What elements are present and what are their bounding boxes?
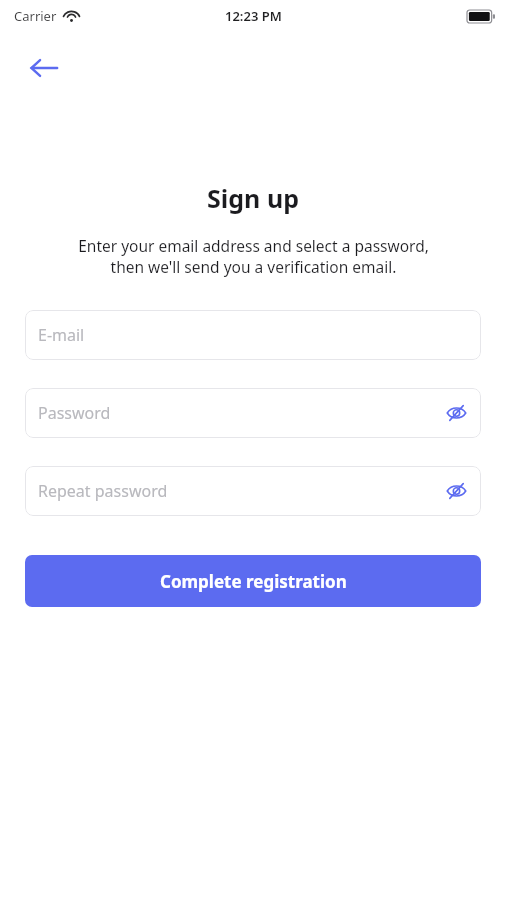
staticText: E-mail [38, 324, 85, 346]
button[interactable]: Show password [441, 398, 471, 428]
button[interactable]: Show password [441, 476, 471, 506]
staticText: 12:23 PM [225, 7, 282, 25]
staticText: Password [38, 402, 111, 424]
staticText: Carrier [14, 7, 57, 25]
button[interactable]: Repeat password [25, 466, 481, 516]
staticText: Enter your email address and select a pa… [78, 235, 429, 278]
staticText: Complete registration [160, 570, 347, 593]
button[interactable]: Password [25, 388, 481, 438]
button[interactable]: Back [22, 46, 66, 90]
button[interactable]: Complete registration [25, 555, 481, 607]
staticText: Sign up [207, 181, 299, 215]
staticText: Repeat password [38, 480, 168, 502]
button[interactable]: E-mail [25, 310, 481, 360]
